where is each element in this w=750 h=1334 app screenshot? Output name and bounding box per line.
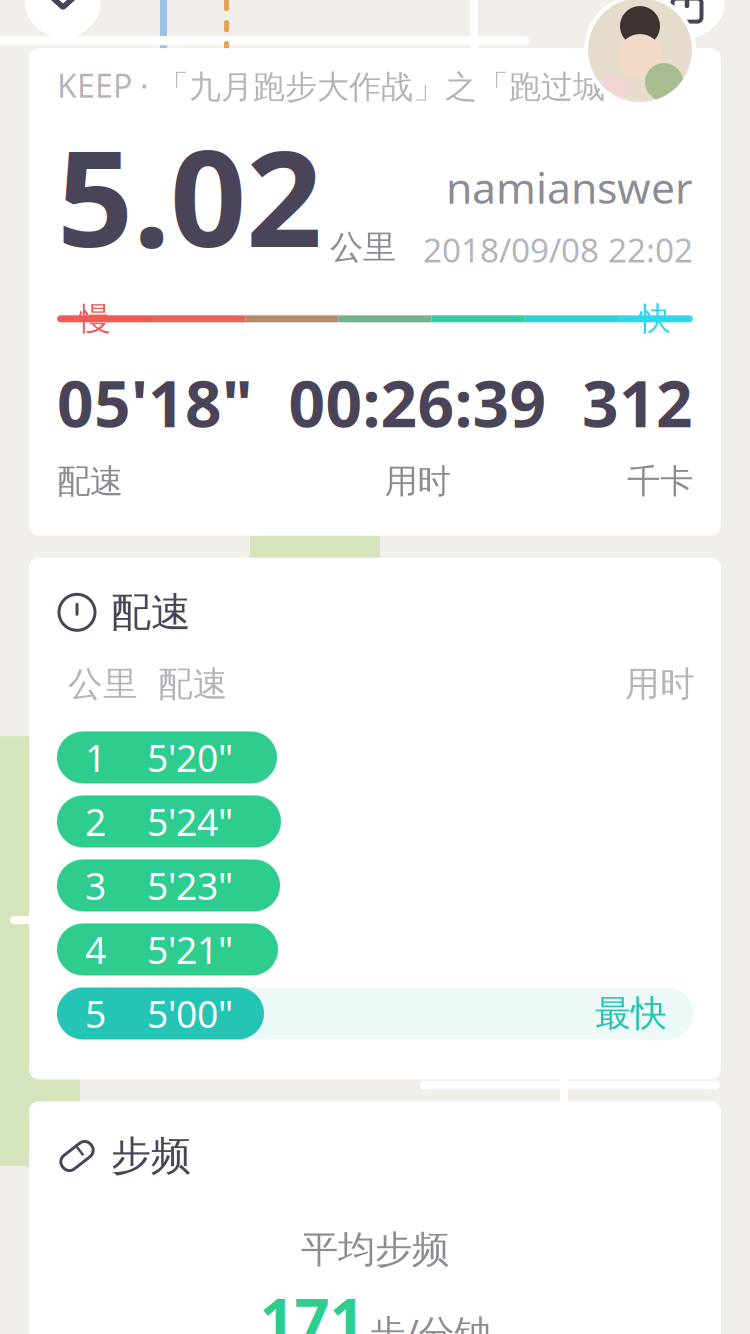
staticText: 用时 — [625, 663, 695, 705]
staticText: 4 — [85, 925, 106, 974]
staticText: 171 — [259, 1278, 364, 1334]
staticText: 最快 — [595, 991, 667, 1036]
staticText: 5'00" — [147, 989, 233, 1038]
staticText: 5'20" — [147, 733, 233, 782]
staticText: 2018/09/08 22:02 — [423, 228, 693, 272]
button[interactable]: 最快 — [29, 987, 721, 1039]
button[interactable]: 3 — [29, 859, 721, 911]
staticText: 00:26:39 — [288, 360, 546, 445]
staticText: 5.02 — [57, 107, 322, 284]
button[interactable]: 1 — [29, 731, 721, 783]
staticText: 3 — [85, 861, 106, 910]
button[interactable]: Share — [649, 0, 725, 38]
staticText: 配速 — [158, 663, 228, 705]
button[interactable]: Collapse — [25, 0, 101, 38]
staticText: KEEP · 「九月跑步大作战」之「跑过城市」 — [57, 64, 669, 107]
staticText: 步频 — [111, 1131, 191, 1181]
staticText: 千卡 — [627, 461, 693, 502]
staticText: 平均步频 — [301, 1227, 449, 1272]
staticText: 2 — [85, 797, 106, 846]
staticText: 公里 — [68, 663, 138, 705]
staticText: 5 — [85, 989, 106, 1038]
staticText: namianswer — [446, 159, 693, 216]
staticText: 配速 — [57, 461, 123, 502]
staticText: 公里 — [330, 227, 396, 268]
staticText: 慢 — [79, 299, 111, 338]
staticText: 5'24" — [147, 797, 233, 846]
staticText: 5'21" — [147, 925, 233, 974]
staticText: 1 — [85, 733, 106, 782]
button[interactable]: 2 — [29, 795, 721, 847]
staticText: 05'18" — [57, 360, 253, 445]
staticText: 步/分钟 — [369, 1308, 490, 1334]
staticText: 5'23" — [147, 861, 233, 910]
staticText: 配速 — [111, 588, 191, 637]
staticText: 用时 — [384, 461, 450, 502]
staticText: 快 — [639, 299, 671, 338]
staticText: 312 — [582, 360, 693, 445]
button[interactable]: 4 — [29, 923, 721, 975]
